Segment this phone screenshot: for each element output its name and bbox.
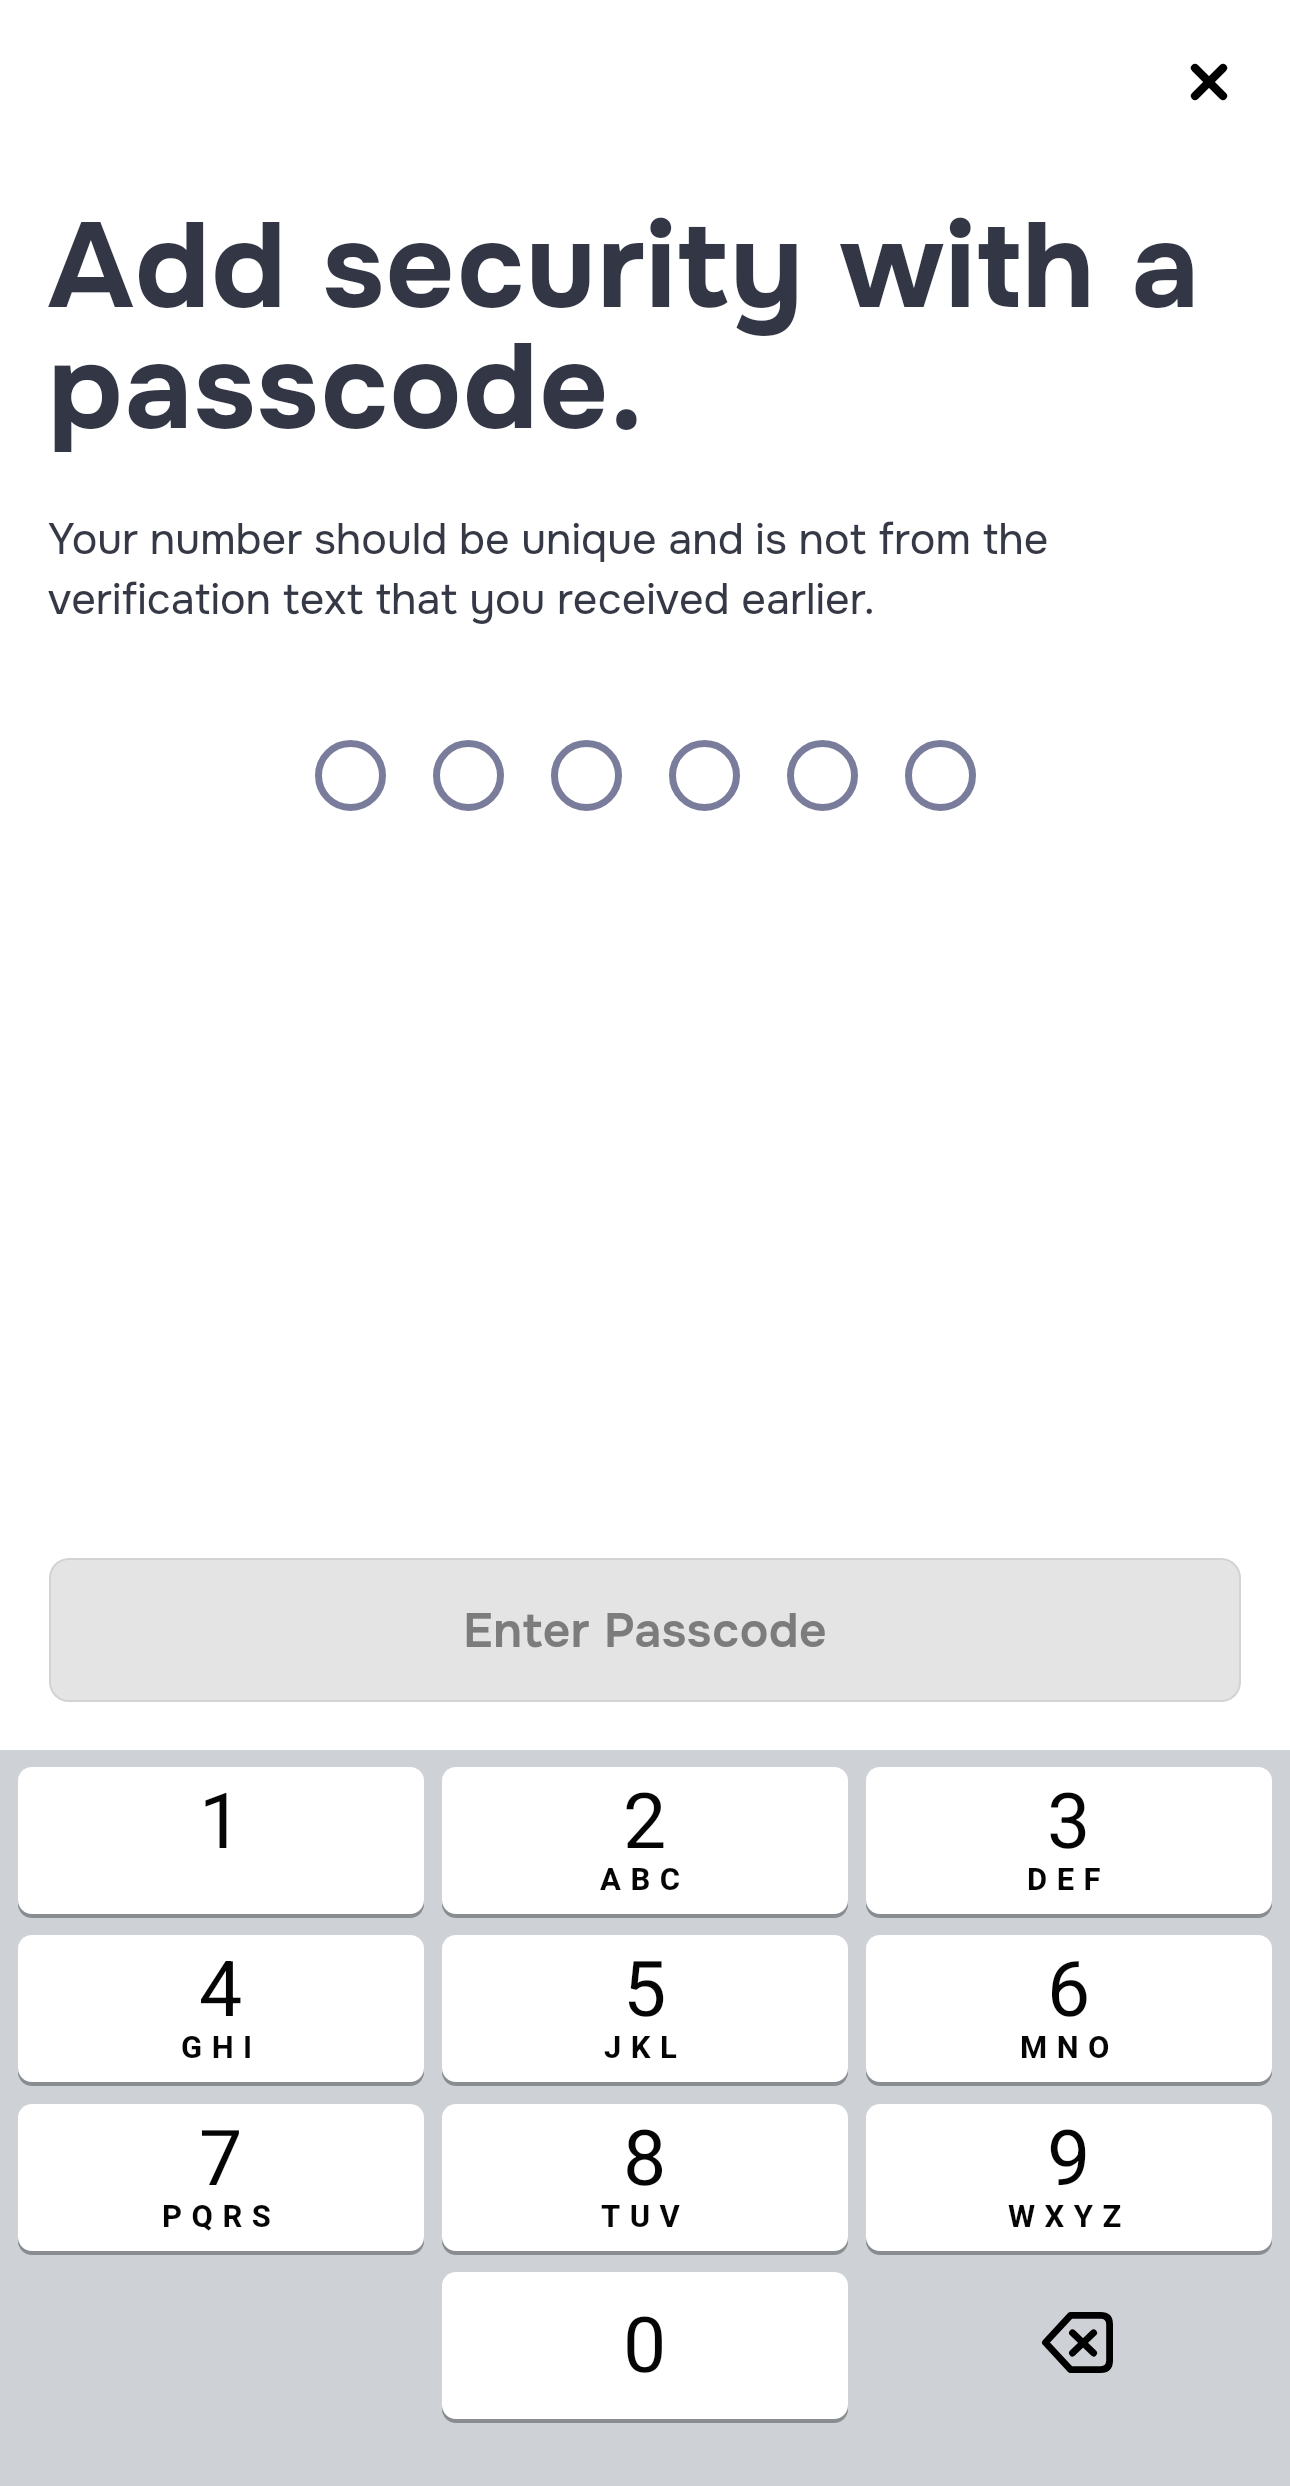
button[interactable]: 4 — [18, 1935, 424, 2082]
staticText: 0 — [623, 2291, 667, 2404]
button[interactable]: 6 — [866, 1935, 1272, 2082]
staticText: GHI — [181, 2026, 262, 2072]
button[interactable]: 7 — [18, 2104, 424, 2251]
button[interactable]: 8 — [442, 2104, 848, 2251]
staticText: 9 — [1047, 2104, 1091, 2217]
button[interactable]: Enter Passcode — [49, 1558, 1241, 1702]
staticText: 3 — [1047, 1767, 1091, 1880]
button[interactable]: 2 — [442, 1767, 848, 1914]
button[interactable]: 3 — [866, 1767, 1272, 1914]
staticText: Your number should be unique and is not … — [48, 512, 1228, 628]
staticText: Enter Passcode — [463, 1600, 827, 1661]
staticText: 8 — [623, 2104, 667, 2217]
staticText: WXYZ — [1008, 2195, 1131, 2241]
staticText: TUV — [601, 2195, 690, 2241]
button[interactable]: 0 — [442, 2272, 848, 2419]
staticText: 5 — [623, 1935, 667, 2048]
staticText: DEF — [1027, 1858, 1111, 1904]
staticText: ABC — [600, 1858, 690, 1904]
button[interactable]: 5 — [442, 1935, 848, 2082]
button[interactable]: Close — [1161, 34, 1257, 130]
staticText: 4 — [199, 1935, 243, 2048]
staticText: 7 — [199, 2104, 243, 2217]
button[interactable]: 1 — [18, 1767, 424, 1914]
staticText: JKL — [604, 2026, 687, 2072]
staticText: 1 — [199, 1767, 243, 1880]
staticText: PQRS — [162, 2195, 281, 2241]
staticText: 6 — [1047, 1935, 1091, 2048]
staticText: MNO — [1020, 2026, 1119, 2072]
staticText: Add security with a passcode. — [48, 191, 1258, 465]
staticText: 2 — [623, 1767, 667, 1880]
button[interactable]: Backspace — [866, 2272, 1272, 2419]
button[interactable]: 9 — [866, 2104, 1272, 2251]
